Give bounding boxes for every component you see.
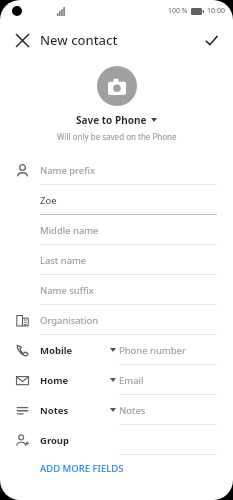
button[interactable]: Mobile [0,335,233,365]
button[interactable]: Add photo [97,66,137,106]
button[interactable]: Group [0,425,233,455]
button[interactable]: ADD MORE FIELDS [40,460,124,477]
staticText: Name suffix [40,284,94,297]
button[interactable]: Last name [0,245,233,275]
staticText: Notes [40,404,69,417]
staticText: ADD MORE FIELDS [40,462,124,475]
button[interactable]: Middle name [0,215,233,245]
button[interactable]: Name suffix [0,275,233,305]
staticText: Last name [40,254,87,267]
staticText: Notes [119,404,146,417]
button[interactable]: Notes [0,395,233,425]
button[interactable]: Home [0,365,233,395]
staticText: Home [40,374,69,387]
staticText: 10:00 [207,6,225,16]
button[interactable]: Name prefix [0,155,233,185]
button[interactable]: Close [8,26,36,54]
staticText: Organisation [40,314,99,327]
button[interactable]: Organisation [0,305,233,335]
staticText: Zoe [40,194,57,207]
staticText: 100 % [168,6,188,16]
staticText: Mobile [40,344,73,357]
staticText: Will only be saved on the Phone [57,131,177,142]
staticText: New contact [40,31,118,49]
staticText: Email [119,374,144,387]
staticText: Name prefix [40,164,95,177]
button[interactable]: Save to Phone [72,112,161,128]
staticText: Group [40,434,70,447]
button[interactable]: Zoe [0,185,233,215]
staticText: Save to Phone [76,113,147,127]
staticText: Phone number [119,344,186,357]
staticText: Middle name [40,224,99,237]
button[interactable]: Save [197,26,225,54]
